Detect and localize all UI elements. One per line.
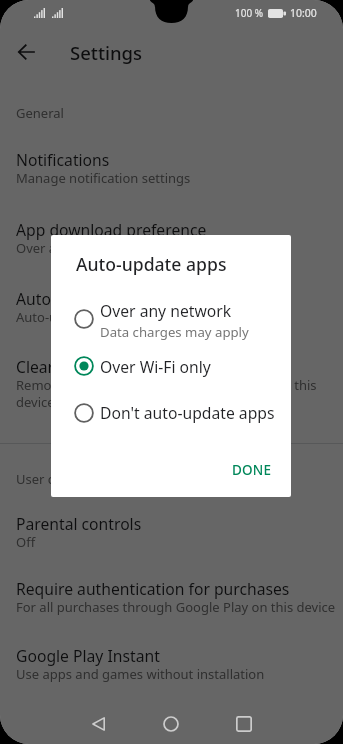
button[interactable]: Require authentication for purchases	[0, 569, 343, 611]
staticText: Over any network	[100, 300, 232, 321]
button[interactable]: App download preference	[0, 210, 343, 252]
staticText: Notifications	[16, 149, 110, 170]
staticText: Clear local search history	[16, 356, 200, 377]
button[interactable]: Back	[6, 32, 46, 72]
staticText: Auto-update apps over Wi-Fi only	[16, 308, 218, 326]
staticText: General	[16, 104, 64, 122]
staticText: Use apps and games without installation	[16, 665, 265, 683]
staticText: Settings	[70, 40, 143, 65]
staticText: For all purchases through Google Play on…	[16, 598, 336, 616]
staticText: Don't auto-update apps	[100, 402, 275, 423]
staticText: Manage notification settings	[16, 169, 191, 187]
button[interactable]: Parental controls	[0, 504, 343, 546]
staticText: Removes all searches you've performed fr…	[16, 376, 317, 394]
staticText: DONE	[232, 461, 272, 479]
staticText: Require authentication for purchases	[16, 578, 290, 599]
button[interactable]: Over Wi-Fi only	[51, 344, 291, 388]
button[interactable]: Clear local search history	[0, 347, 343, 407]
button[interactable]: Notifications	[0, 140, 343, 182]
staticText: Over Wi-Fi only	[100, 356, 211, 377]
button[interactable]: Auto-update apps	[0, 279, 343, 321]
staticText: 10:00	[290, 6, 317, 20]
button[interactable]: Don't auto-update apps	[51, 391, 291, 435]
staticText: App download preference	[16, 219, 207, 240]
staticText: Auto-update apps	[16, 288, 148, 309]
staticText: Parental controls	[16, 513, 142, 534]
staticText: 100 %	[235, 6, 264, 20]
staticText: User controls	[16, 470, 98, 488]
button[interactable]: Back	[74, 700, 122, 744]
button[interactable]: DONE	[220, 450, 284, 490]
staticText: Google Play Instant	[16, 645, 160, 666]
button[interactable]: Over any network	[51, 297, 291, 341]
button[interactable]: Home	[147, 700, 195, 744]
staticText: Data charges may apply	[100, 323, 249, 341]
staticText: device	[16, 393, 55, 411]
staticText: Over any network	[16, 239, 125, 257]
button[interactable]: Google Play Instant	[0, 636, 343, 678]
button[interactable]: Recent apps	[220, 700, 268, 744]
staticText: Off	[16, 533, 36, 551]
staticText: Auto-update apps	[76, 252, 227, 276]
